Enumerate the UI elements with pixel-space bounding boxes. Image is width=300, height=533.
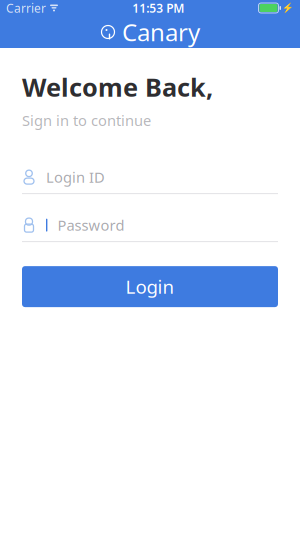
staticText: Sign in to continue bbox=[22, 111, 151, 130]
staticText: Carrier bbox=[6, 0, 46, 16]
button[interactable]: Login bbox=[22, 266, 278, 307]
staticText: Login bbox=[125, 274, 174, 299]
staticText: Password bbox=[57, 215, 124, 235]
staticText: ⚡ bbox=[282, 3, 294, 13]
staticText: Canary bbox=[122, 16, 200, 48]
staticText: Login ID bbox=[46, 167, 105, 187]
staticText: Welcome Back, bbox=[22, 70, 213, 104]
staticText: 11:53 PM bbox=[132, 0, 184, 16]
